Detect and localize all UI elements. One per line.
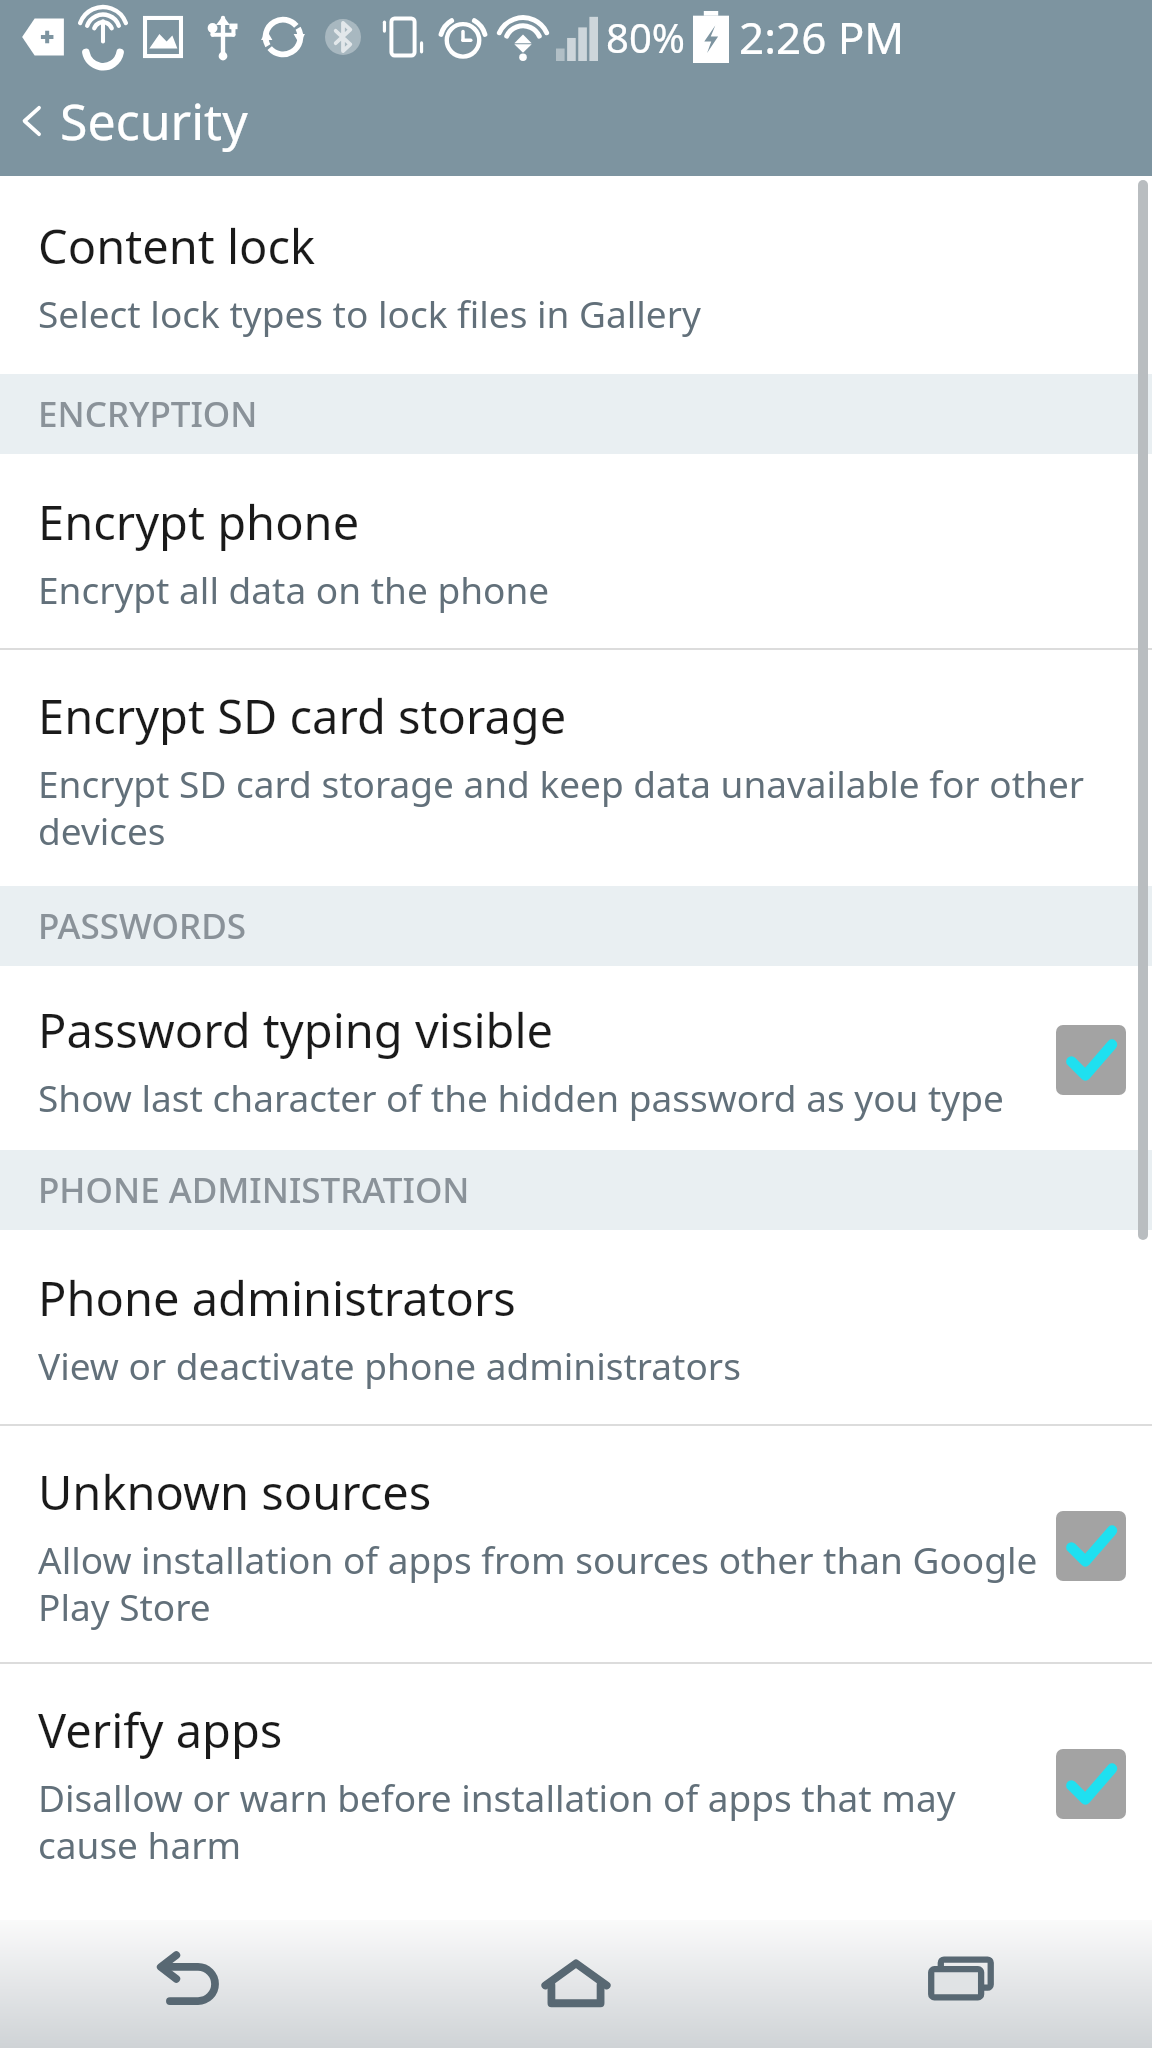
button[interactable]: Security <box>0 66 1152 176</box>
button[interactable]: Password typing visible <box>0 966 1152 1150</box>
staticText: Allow installation of apps from sources … <box>38 1534 1038 1632</box>
staticText: Encrypt phone <box>38 490 360 554</box>
staticText: Phone administrators <box>38 1266 516 1330</box>
button[interactable]: Back <box>0 1920 384 2048</box>
button[interactable]: Toggle checkbox <box>1056 1511 1126 1581</box>
staticText: 80% <box>606 10 685 64</box>
staticText: Disallow or warn before installation of … <box>38 1772 1038 1870</box>
staticText: Verify apps <box>38 1698 283 1762</box>
staticText: ENCRYPTION <box>38 390 258 438</box>
staticText: Encrypt SD card storage and keep data un… <box>38 758 1126 856</box>
staticText: View or deactivate phone administrators <box>38 1340 741 1390</box>
staticText: Security <box>60 87 248 155</box>
staticText: Encrypt all data on the phone <box>38 564 550 614</box>
button[interactable]: Toggle checkbox <box>1056 1025 1126 1095</box>
button[interactable]: Home <box>384 1920 768 2048</box>
button[interactable]: Encrypt phone <box>0 454 1152 648</box>
staticText: Content lock <box>38 214 316 278</box>
staticText: PASSWORDS <box>38 902 247 950</box>
button[interactable]: Verify apps <box>0 1664 1152 1900</box>
button[interactable]: Phone administrators <box>0 1230 1152 1424</box>
staticText: Show last character of the hidden passwo… <box>38 1072 1004 1122</box>
staticText: PHONE ADMINISTRATION <box>38 1166 470 1214</box>
staticText: Select lock types to lock files in Galle… <box>38 288 701 338</box>
button[interactable]: Toggle checkbox <box>1056 1749 1126 1819</box>
staticText: Unknown sources <box>38 1460 432 1524</box>
button[interactable]: Encrypt SD card storage <box>0 650 1152 886</box>
button[interactable]: Recent apps <box>768 1920 1152 2048</box>
staticText: 2:26 PM <box>739 7 905 67</box>
staticText: Encrypt SD card storage <box>38 684 567 748</box>
staticText: Password typing visible <box>38 998 554 1062</box>
button[interactable]: Content lock <box>0 176 1152 374</box>
button[interactable]: Unknown sources <box>0 1426 1152 1662</box>
